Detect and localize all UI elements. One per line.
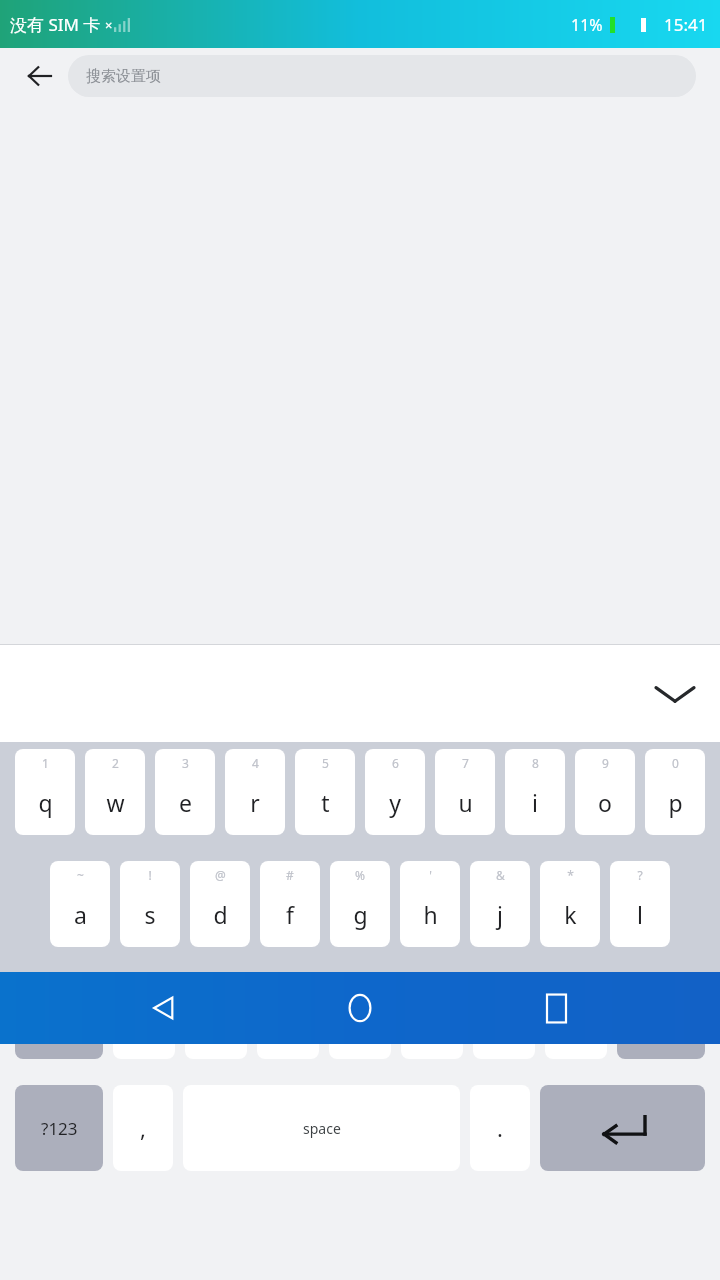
button[interactable]: 9 (575, 749, 635, 835)
staticText: r (250, 787, 260, 818)
staticText: d (213, 899, 228, 930)
button[interactable]: Backspace (617, 973, 705, 1059)
button[interactable]: 搜索设置项 (68, 55, 696, 97)
staticText: m (565, 1011, 587, 1042)
staticText: l (637, 899, 643, 930)
button[interactable]: space (183, 1085, 460, 1171)
button[interactable]: Home (328, 976, 392, 1040)
staticText: 15:41 (664, 13, 708, 36)
staticText: p (668, 787, 683, 818)
staticText: v (354, 1011, 366, 1042)
button[interactable]: H (113, 973, 175, 1059)
button[interactable]: ; (473, 973, 535, 1059)
button[interactable]: 6 (365, 749, 425, 835)
button[interactable]: | (185, 973, 247, 1059)
staticText: space (303, 1119, 341, 1138)
staticText: s (144, 899, 156, 930)
staticText: , (140, 1113, 146, 1143)
staticText: ? (637, 867, 643, 883)
staticText: × (105, 16, 113, 34)
staticText: 6 (392, 755, 399, 771)
staticText: 1 (42, 755, 49, 771)
button[interactable]: ¯ (257, 973, 319, 1059)
staticText: q (38, 787, 53, 818)
button[interactable]: 2 (85, 749, 145, 835)
button[interactable]: 4 (225, 749, 285, 835)
staticText: 5 (322, 755, 329, 771)
button[interactable]: ? (610, 861, 670, 947)
button[interactable]: ! (120, 861, 180, 947)
staticText: . (497, 1113, 503, 1143)
button[interactable]: Back (132, 976, 196, 1040)
staticText: 7 (462, 755, 469, 771)
staticText: u (458, 787, 473, 818)
staticText: h (423, 899, 438, 930)
button[interactable]: % (330, 861, 390, 947)
button[interactable]: # (260, 861, 320, 947)
staticText: j (497, 899, 503, 930)
button[interactable]: * (540, 861, 600, 947)
staticText: o (598, 787, 612, 818)
button[interactable]: Back (18, 54, 62, 98)
button[interactable]: 8 (505, 749, 565, 835)
button[interactable]: & (470, 861, 530, 947)
staticText: * (567, 867, 574, 883)
button[interactable]: ~ (50, 861, 110, 947)
staticText: 9 (602, 755, 609, 771)
staticText: f (286, 899, 294, 930)
staticText: g (353, 899, 368, 930)
staticText: @ (215, 867, 226, 883)
staticText: y (389, 787, 401, 818)
button[interactable]: @ (190, 861, 250, 947)
button[interactable]: ' (400, 861, 460, 947)
button[interactable]: Recents (524, 976, 588, 1040)
button[interactable]: Hide keyboard (648, 667, 702, 721)
staticText: i (532, 787, 538, 818)
button[interactable]: , (113, 1085, 173, 1171)
staticText: ! (148, 867, 152, 883)
staticText: _ (357, 979, 363, 995)
button[interactable]: _ (329, 973, 391, 1059)
staticText: a (74, 899, 87, 930)
button[interactable]: / (545, 973, 607, 1059)
button[interactable]: Shift (15, 973, 103, 1059)
staticText: 搜索设置项 (86, 67, 161, 86)
staticText: 0 (672, 755, 679, 771)
button[interactable]: 0 (645, 749, 705, 835)
staticText: % (355, 867, 365, 883)
staticText: 11% (571, 14, 603, 36)
staticText: ' (429, 867, 432, 883)
button[interactable]: 3 (155, 749, 215, 835)
staticText: ?123 (41, 1117, 78, 1140)
staticText: 8 (532, 755, 539, 771)
staticText: k (564, 899, 577, 930)
button[interactable]: 7 (435, 749, 495, 835)
staticText: e (179, 787, 192, 818)
button[interactable]: 1 (15, 749, 75, 835)
button[interactable]: Enter (540, 1085, 705, 1171)
button[interactable]: ?123 (15, 1085, 103, 1171)
button[interactable]: . (470, 1085, 530, 1171)
staticText: 4 (252, 755, 259, 771)
staticText: 没有 SIM 卡 (10, 13, 101, 36)
staticText: & (496, 867, 505, 883)
staticText: 2 (112, 755, 119, 771)
staticText: t (321, 787, 330, 818)
staticText: # (286, 867, 294, 883)
button[interactable]: 5 (295, 749, 355, 835)
staticText: ~ (77, 867, 84, 883)
staticText: 3 (182, 755, 189, 771)
staticText: w (106, 787, 125, 818)
button[interactable]: : (401, 973, 463, 1059)
